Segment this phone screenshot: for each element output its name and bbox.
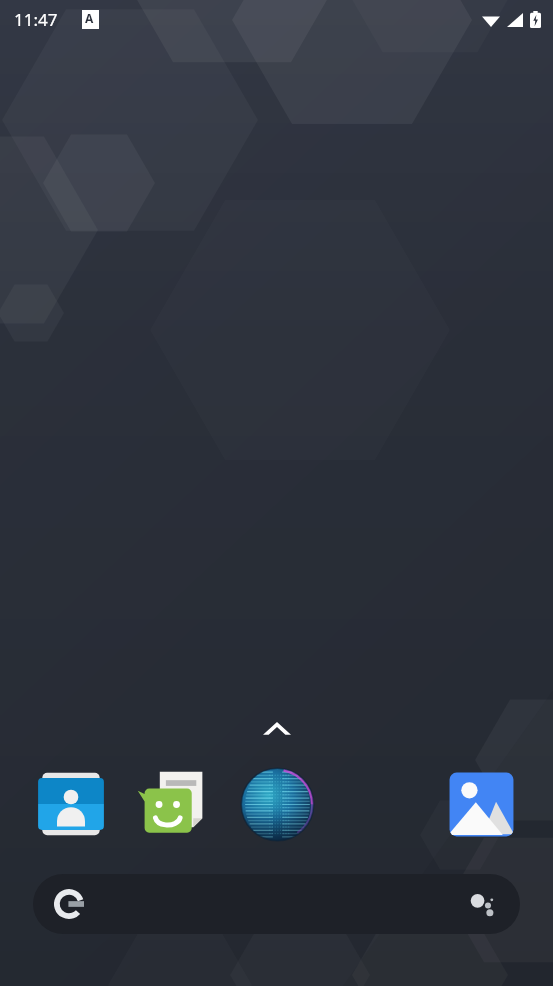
button[interactable]: Photos	[446, 769, 517, 840]
button[interactable]: Contacts	[36, 769, 106, 839]
button[interactable]: Google Search	[33, 874, 520, 934]
button[interactable]: Browser	[239, 766, 316, 843]
staticText: 11:47	[14, 8, 58, 31]
other: Google Search	[53, 888, 85, 920]
button[interactable]: Messaging	[137, 765, 213, 841]
staticText: A	[85, 10, 94, 26]
button[interactable]: Open app drawer	[256, 713, 298, 743]
button[interactable]: Google Assistant	[466, 887, 500, 921]
